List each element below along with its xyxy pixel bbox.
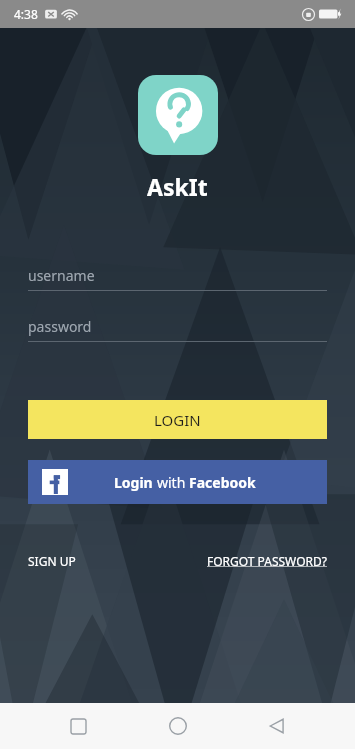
button[interactable]: password: [28, 317, 327, 342]
button[interactable]: SIGN UP: [28, 549, 76, 573]
staticText: SIGN UP: [28, 553, 76, 569]
button[interactable]: Home: [156, 704, 200, 748]
button[interactable]: Recent apps: [56, 704, 100, 748]
button[interactable]: Login: [28, 460, 327, 504]
staticText: username: [28, 266, 95, 285]
staticText: 4:38: [14, 6, 38, 22]
staticText: Facebook: [189, 473, 256, 492]
button[interactable]: username: [28, 266, 327, 291]
staticText: LOGIN: [154, 410, 201, 430]
staticText: password: [28, 317, 92, 336]
button[interactable]: LOGIN: [28, 400, 327, 439]
staticText: FORGOT PASSWORD?: [207, 553, 327, 569]
button[interactable]: Back: [255, 704, 299, 748]
staticText: with: [157, 473, 189, 492]
button[interactable]: FORGOT PASSWORD?: [207, 549, 327, 573]
staticText: AskIt: [147, 171, 208, 202]
staticText: Login: [114, 473, 157, 492]
